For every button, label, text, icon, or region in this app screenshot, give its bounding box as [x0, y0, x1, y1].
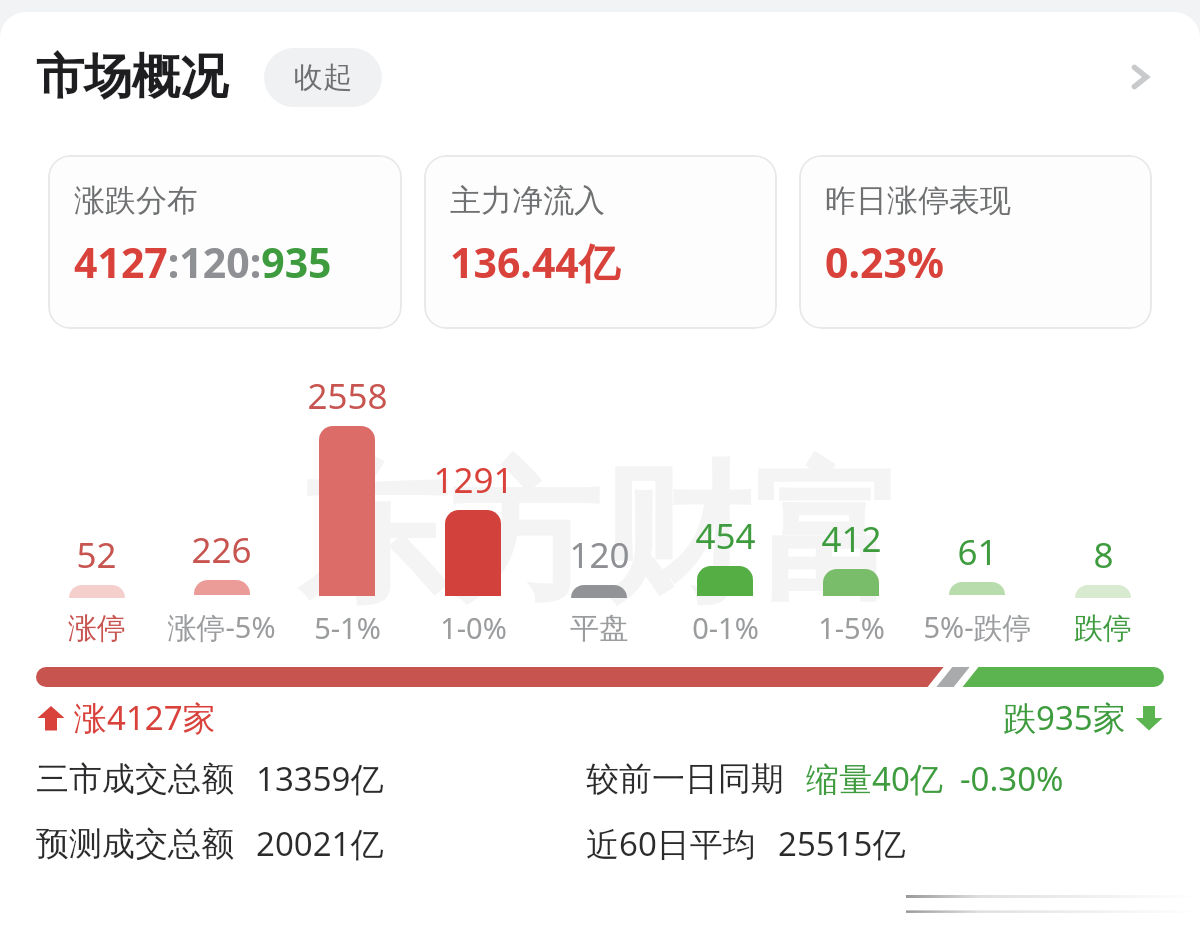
staticText: 0.23%: [825, 234, 944, 290]
staticText: 20021亿: [256, 821, 384, 866]
staticText: 136.44亿: [450, 234, 620, 290]
staticText: 1291: [433, 456, 514, 504]
staticText: 13359亿: [256, 756, 384, 801]
staticText: 454: [695, 512, 756, 560]
staticText: 1-5%: [818, 608, 885, 647]
other: 上涨: [36, 703, 66, 733]
staticText: 226: [191, 526, 252, 574]
staticText: 平盘: [570, 610, 628, 647]
staticText: 1-0%: [440, 608, 507, 647]
button[interactable]: 市场概况: [0, 12, 1200, 142]
button[interactable]: 上涨: [36, 695, 216, 740]
button[interactable]: 主力净流入: [424, 155, 777, 329]
staticText: 120: [569, 531, 630, 579]
button[interactable]: 预测成交总额: [36, 821, 1164, 866]
staticText: 52: [76, 531, 117, 579]
staticText: 412: [821, 515, 882, 563]
staticText: 涨停: [68, 610, 126, 647]
staticText: 缩量40亿 -0.30%: [806, 756, 1064, 801]
button[interactable]: 涨跌分布: [48, 155, 402, 329]
button[interactable]: [36, 667, 1164, 687]
staticText: 昨日涨停表现: [825, 181, 1011, 220]
staticText: 25515亿: [778, 821, 906, 866]
staticText: 2558: [307, 372, 388, 420]
staticText: 预测成交总额: [36, 823, 234, 865]
staticText: 涨4127家: [74, 695, 216, 740]
staticText: 跌停: [1074, 610, 1132, 647]
staticText: 5-1%: [314, 608, 381, 647]
staticText: 涨跌分布: [74, 181, 198, 220]
button[interactable]: 展开更多: [1110, 47, 1170, 107]
staticText: 8: [1093, 531, 1114, 579]
staticText: 收起: [294, 59, 352, 96]
staticText: 0-1%: [692, 608, 759, 647]
button[interactable]: 跌935家: [1003, 695, 1164, 740]
button[interactable]: 收起: [264, 48, 382, 107]
staticText: 东方财富: [296, 442, 904, 631]
staticText: 较前一日同期: [586, 758, 784, 800]
button[interactable]: 昨日涨停表现: [799, 155, 1152, 329]
staticText: 三市成交总额: [36, 758, 234, 800]
staticText: 市场概况: [36, 47, 228, 107]
staticText: 近60日平均: [586, 821, 756, 866]
other: 下跌: [1134, 703, 1164, 733]
staticText: 涨停-5%: [167, 607, 276, 647]
staticText: 主力净流入: [450, 181, 605, 220]
button[interactable]: 三市成交总额: [36, 756, 1164, 801]
staticText: 跌935家: [1003, 695, 1126, 740]
staticText: 5%-跌停: [923, 607, 1032, 647]
staticText: 61: [957, 528, 998, 576]
staticText: 4127:120:935: [74, 234, 332, 290]
